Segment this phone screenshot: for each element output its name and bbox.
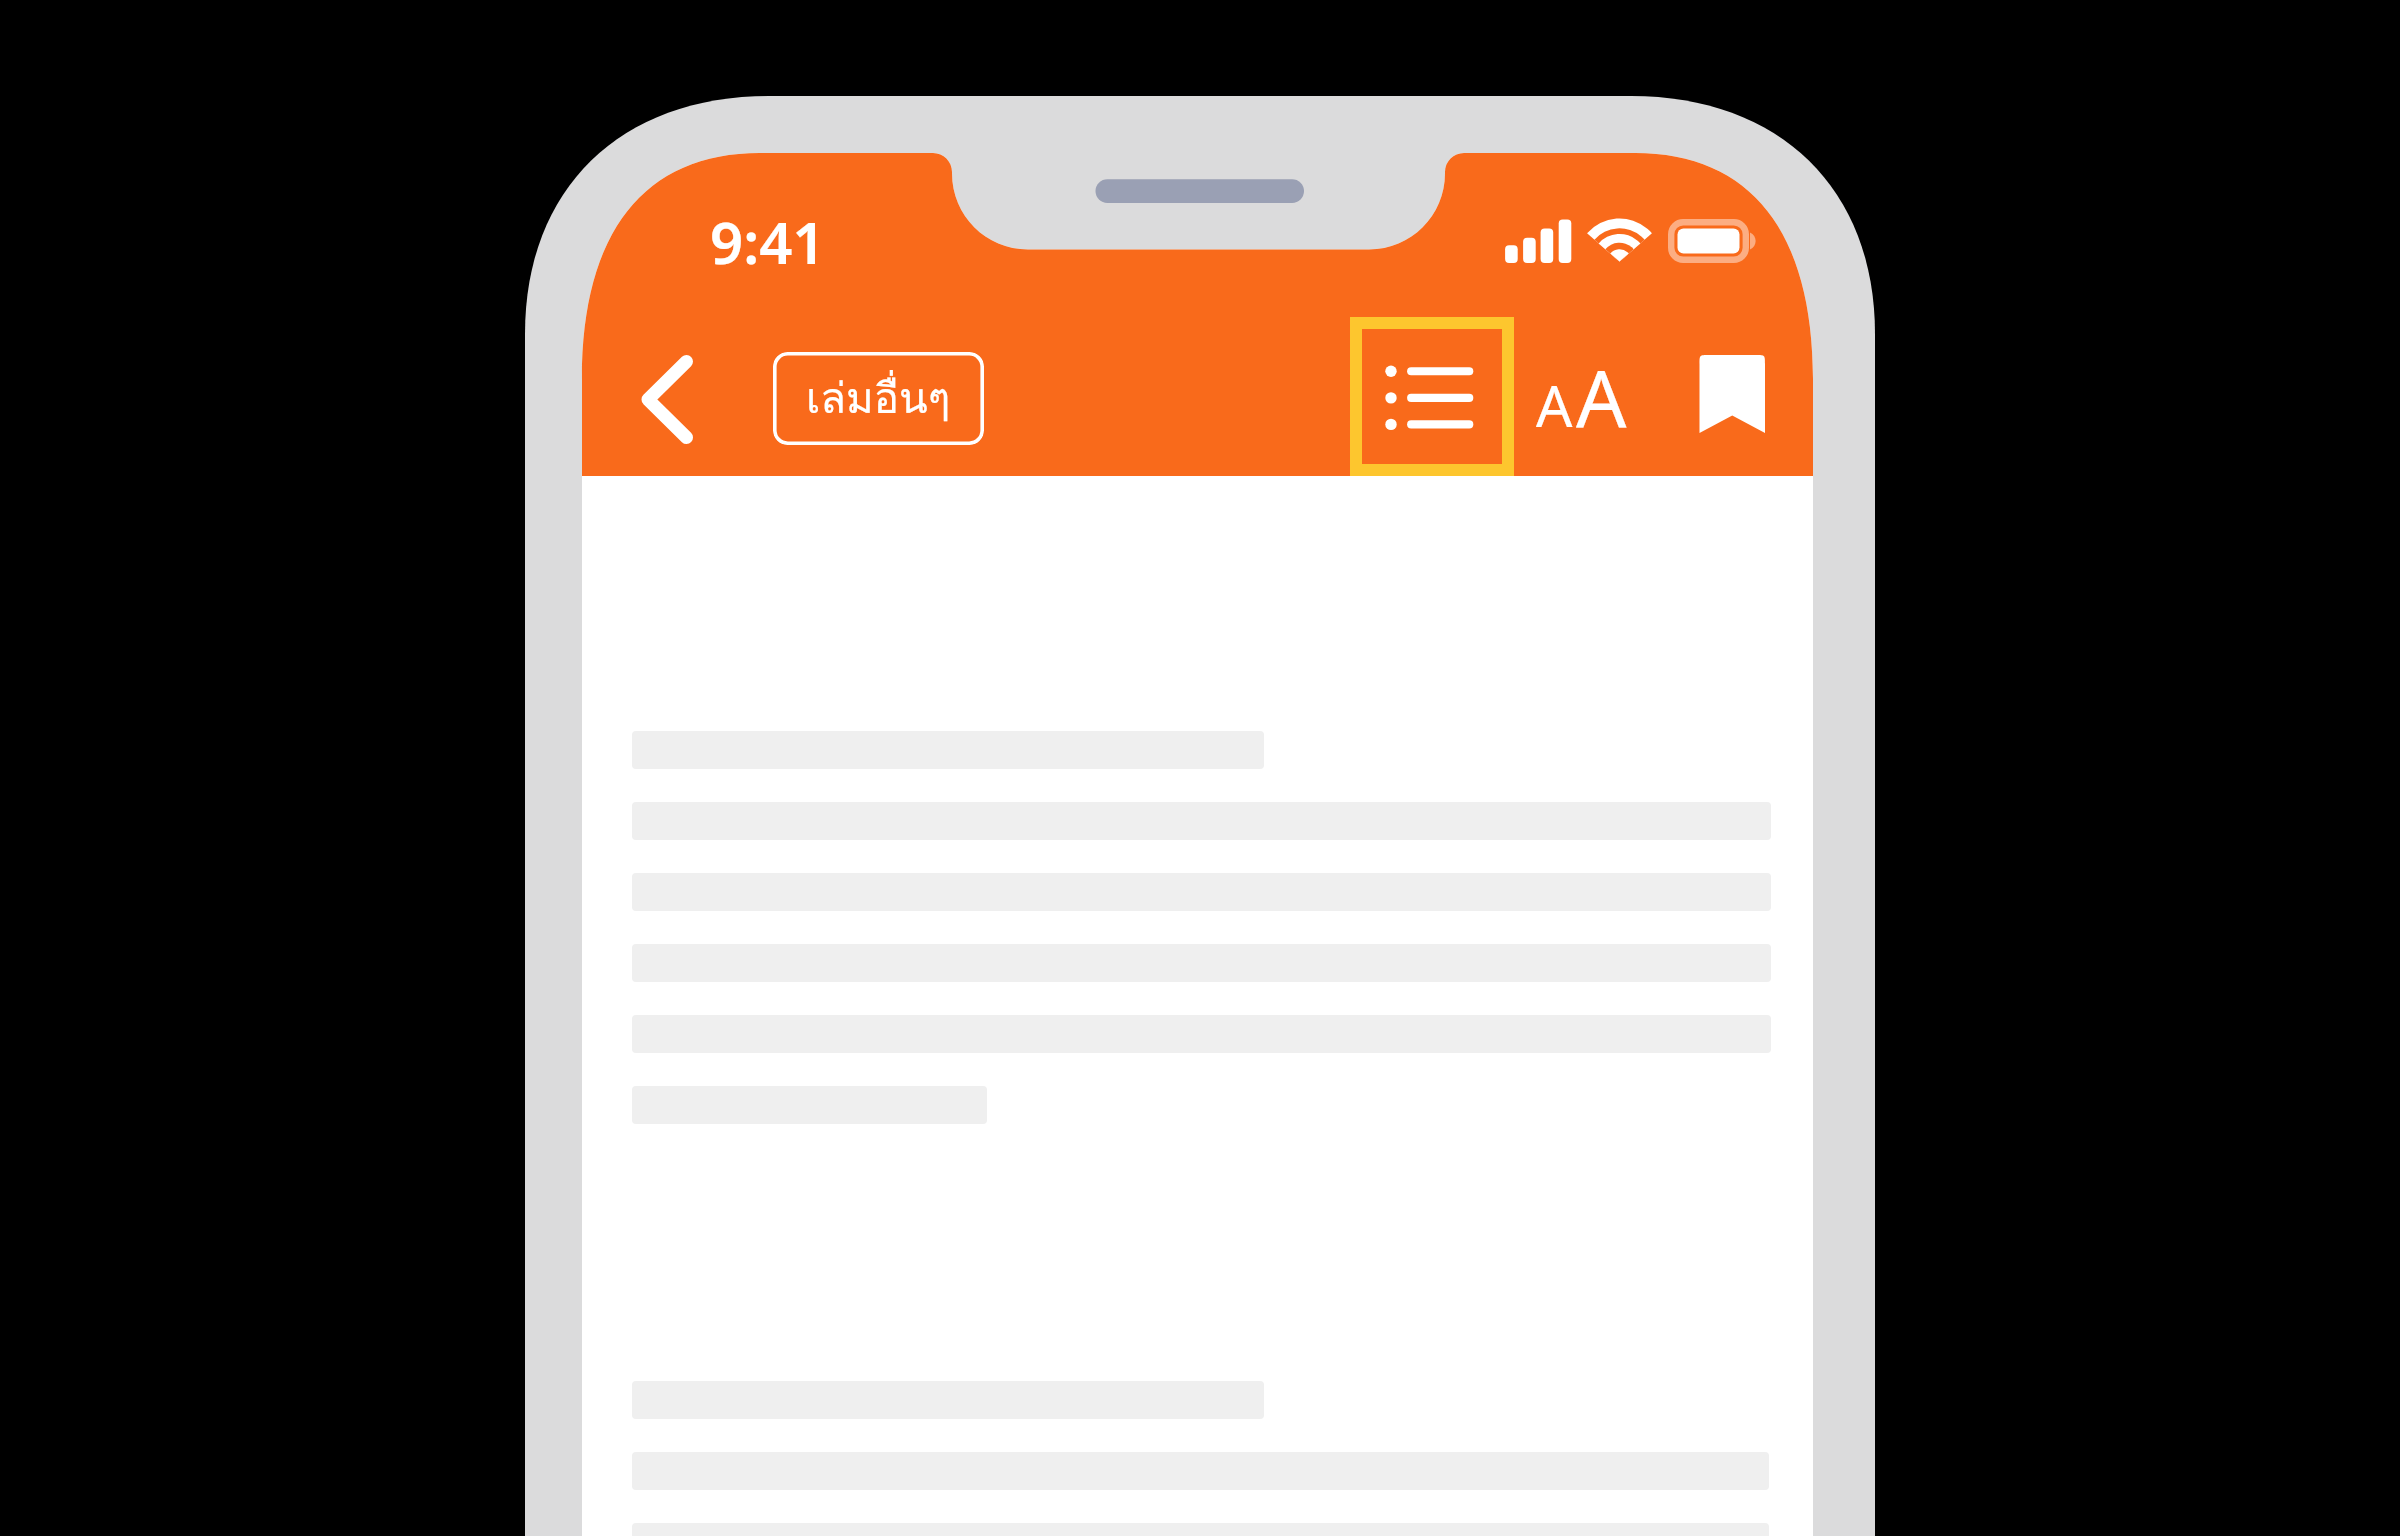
button[interactable]: เล่มอื่นๆ bbox=[773, 352, 984, 445]
button[interactable]: Bookmark bbox=[1690, 345, 1780, 445]
staticText: 9:41 bbox=[710, 202, 826, 268]
button[interactable]: Back bbox=[628, 340, 708, 460]
staticText: เล่มอื่นๆ bbox=[806, 365, 951, 432]
staticText: A bbox=[1536, 366, 1573, 444]
button[interactable]: Text size bbox=[1531, 340, 1635, 440]
button[interactable]: Table of contents bbox=[1350, 317, 1514, 476]
staticText: A bbox=[1576, 343, 1627, 443]
